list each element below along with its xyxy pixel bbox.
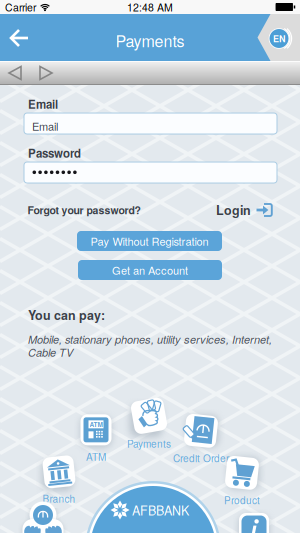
button[interactable]: Forward [38,65,53,80]
staticText: Carrier [5,0,36,14]
button[interactable]: Login [216,201,274,219]
button[interactable]: Email [24,113,277,134]
staticText: 12:48 AM [127,0,173,14]
staticText: ATM [89,420,102,429]
staticText: Mobile, stationary phones, utility servi… [28,331,272,347]
button[interactable]: Forgot your password? [27,202,140,217]
button[interactable]: Get an Account [78,260,222,280]
button[interactable]: ATM [80,414,111,464]
staticText: EN [273,32,285,45]
staticText: Payments [115,29,184,52]
button[interactable]: Back [0,25,36,51]
button[interactable]: Language: EN [257,14,300,61]
staticText: Email [28,96,58,112]
staticText: Login [216,201,251,219]
staticText: ATM [86,449,106,464]
button[interactable]: Credit Order [173,415,229,465]
staticText: Branch [42,491,75,506]
button[interactable]: Branch [42,456,75,506]
staticText: Password [28,145,81,161]
staticText: AFBBANK [132,501,189,519]
button[interactable]: Back [8,65,23,80]
button[interactable]: Info [239,513,269,533]
staticText: Get an Account [112,262,188,278]
button[interactable]: Pay Without Registration [77,231,222,251]
button[interactable]: Support [21,502,65,533]
staticText: Cable TV [28,344,73,360]
staticText: Payments [127,436,171,451]
staticText: Email [32,118,58,134]
staticText: You can pay: [28,306,105,324]
button[interactable]: AFBBANK [85,481,221,533]
button[interactable]: Product [224,457,260,507]
button[interactable]: Payments [127,399,171,451]
staticText: Forgot your password? [27,202,140,217]
staticText: Pay Without Registration [90,233,208,249]
button[interactable] [24,162,277,183]
staticText: Credit Order [173,451,229,465]
staticText: Product [224,493,260,507]
